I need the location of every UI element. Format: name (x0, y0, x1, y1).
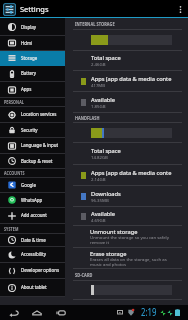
staticText: Accessibility (21, 251, 46, 258)
staticText: Language & input (21, 142, 58, 149)
button[interactable]: Settings (3, 3, 16, 16)
button[interactable]: Downloads (65, 186, 188, 206)
staticText: 1.85GB (91, 104, 106, 109)
staticText: 417MB (91, 83, 106, 88)
button[interactable]: Hdmi (0, 36, 65, 50)
staticText: SYSTEM (4, 226, 19, 232)
staticText: Apps (app data & media conte (91, 75, 172, 82)
button[interactable]: Display (0, 19, 65, 35)
staticText: Unmount storage (90, 228, 138, 235)
button[interactable]: Security (0, 123, 65, 137)
button[interactable]: Storage (0, 51, 65, 65)
staticText: Google (21, 182, 36, 189)
staticText: Apps (21, 86, 32, 93)
button[interactable]: Location services (0, 107, 65, 122)
staticText: Developer options (21, 267, 60, 274)
staticText: HANDFLASH (75, 115, 100, 121)
button[interactable]: Total space (65, 143, 188, 164)
button[interactable]: Accessibility (0, 247, 65, 262)
staticText: Unmount the storage so you can safely re… (90, 235, 170, 245)
staticText: Storage (21, 55, 38, 62)
staticText: 2.14GB (91, 177, 106, 182)
staticText: Erase storage (90, 250, 127, 257)
staticText: Display (21, 24, 37, 31)
button[interactable]: Backup & reset (0, 154, 65, 168)
staticText: Date & time (21, 237, 46, 244)
staticText: INTERNAL STORAGE (75, 21, 115, 27)
staticText: Total space (91, 54, 121, 61)
button[interactable]: Available (65, 207, 188, 225)
staticText: 14.82GB (91, 155, 108, 160)
staticText: ACCOUNTS (4, 170, 25, 176)
button[interactable]: Battery (0, 66, 65, 81)
staticText: 4.69GB (91, 218, 106, 223)
button[interactable]: Available (65, 92, 188, 112)
button[interactable]: Apps (app data & media conte (65, 71, 188, 91)
staticText: Settings (20, 5, 49, 14)
staticText: 2.46GB (91, 62, 106, 67)
button[interactable]: About tablet (0, 279, 65, 296)
staticText: Total space (91, 147, 121, 154)
staticText: Location services (21, 111, 56, 118)
staticText: Downloads (91, 190, 121, 197)
staticText: Backup & reset (21, 158, 53, 165)
staticText: Add account (21, 212, 47, 219)
button[interactable]: Home (29, 305, 45, 320)
staticText: SD-CARD (75, 272, 93, 278)
button[interactable]: Unmount storage (65, 226, 188, 247)
staticText: Security (21, 127, 38, 134)
staticText: Available (91, 210, 116, 217)
button[interactable]: Erase storage (65, 248, 188, 268)
button[interactable]: Language & input (0, 138, 65, 153)
staticText: 2:19 (141, 306, 157, 319)
button[interactable]: Total space (65, 51, 188, 70)
staticText: Available (91, 96, 116, 103)
staticText: WhatsApp (21, 197, 42, 204)
staticText: Apps (app data & media conte (91, 169, 172, 176)
button[interactable]: Recent apps (53, 305, 69, 320)
button[interactable]: WhatsApp (0, 193, 65, 207)
button[interactable]: Apps (0, 82, 65, 97)
staticText: Battery (21, 70, 37, 77)
button[interactable]: Apps (app data & media conte (65, 165, 188, 185)
button[interactable]: Date & time (0, 234, 65, 246)
button[interactable]: Google (0, 178, 65, 192)
button[interactable]: More options (174, 0, 186, 18)
staticText: PERSONAL (4, 99, 24, 105)
button[interactable]: Add account (0, 208, 65, 223)
staticText: Erases all data on the storage, such as … (90, 257, 170, 267)
staticText: Hdmi (21, 40, 33, 47)
button[interactable]: Developer options (0, 263, 65, 278)
staticText: About tablet (21, 284, 47, 291)
staticText: 96.35MB (91, 198, 109, 203)
button[interactable]: Back (6, 305, 22, 320)
